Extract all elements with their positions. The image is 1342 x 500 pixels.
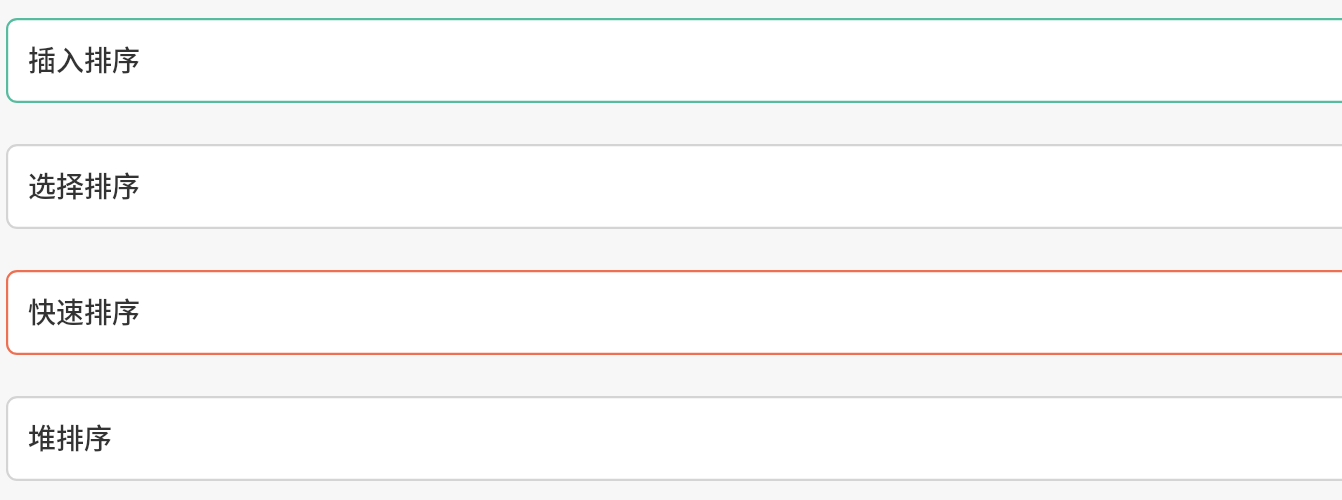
staticText: 插入排序 <box>28 39 141 80</box>
staticText: 堆排序 <box>28 417 113 458</box>
button[interactable]: 快速排序 <box>6 270 1342 355</box>
button[interactable]: 选择排序 <box>6 144 1342 229</box>
button[interactable]: 堆排序 <box>6 396 1342 481</box>
staticText: 快速排序 <box>28 291 141 332</box>
button[interactable]: 插入排序 <box>6 18 1342 103</box>
staticText: 选择排序 <box>28 165 141 206</box>
